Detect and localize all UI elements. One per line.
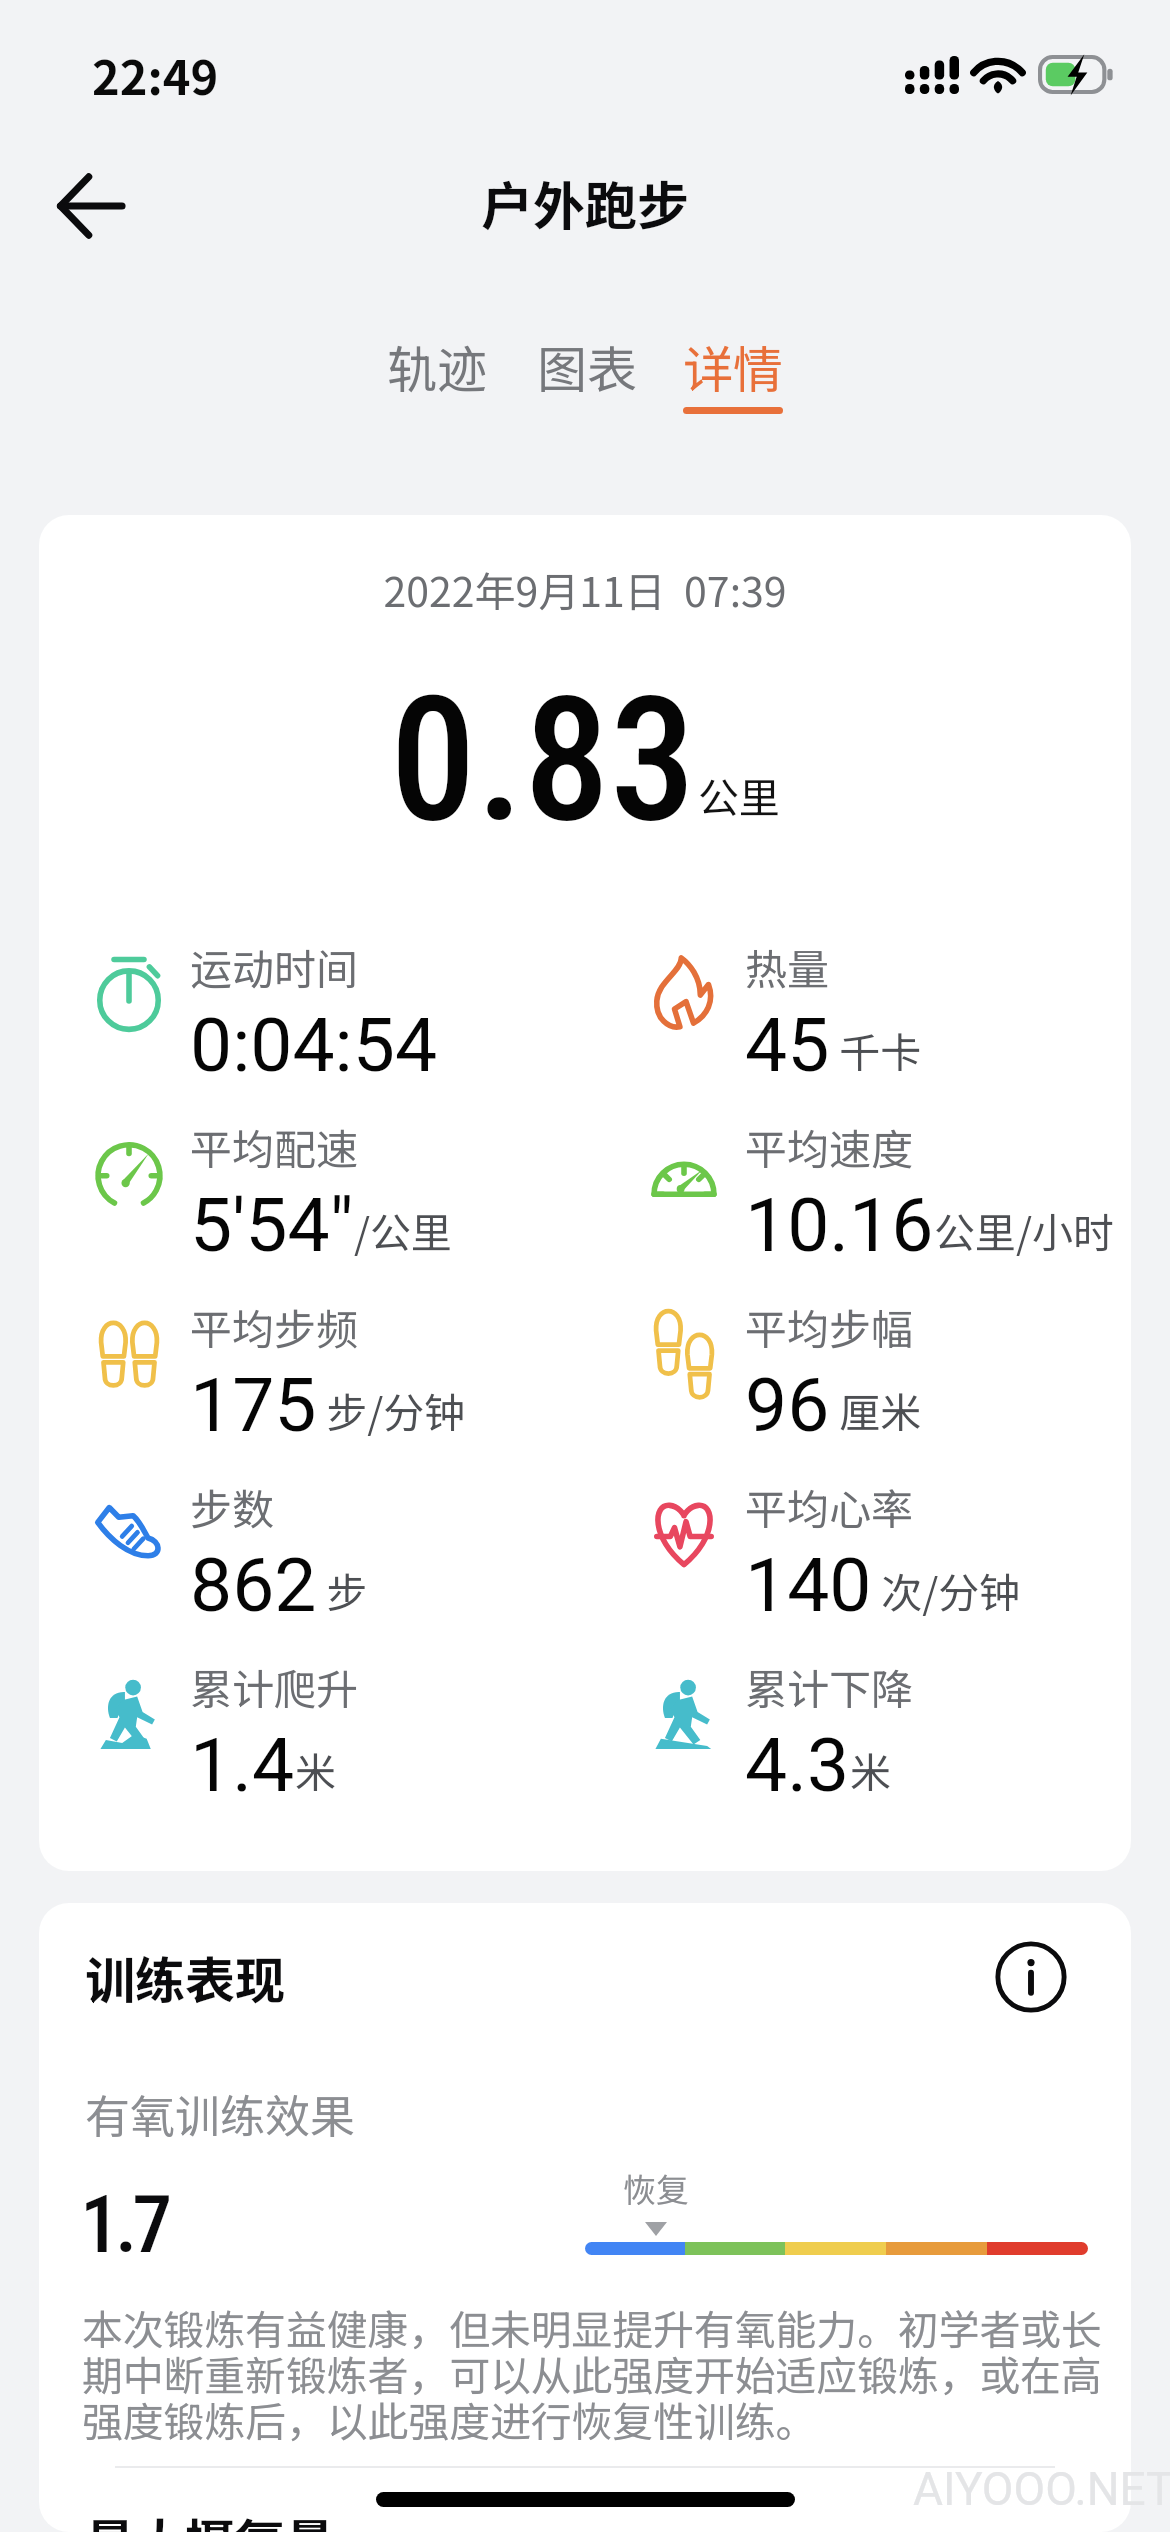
staticText: 平均步频 (190, 1296, 359, 1357)
button[interactable]: Back (34, 150, 146, 262)
staticText: 45 (745, 1001, 830, 1089)
staticText: 热量 (745, 936, 830, 997)
staticText: 10.16 (745, 1181, 934, 1269)
button[interactable]: 详情 (683, 330, 783, 414)
staticText: 图表 (537, 330, 637, 402)
staticText: 1.4 (190, 1721, 295, 1809)
staticText: 175 (190, 1361, 317, 1449)
staticText: 运动时间 (190, 936, 359, 997)
staticText: 步/分钟 (317, 1380, 466, 1439)
staticText: 次/分钟 (872, 1560, 1021, 1619)
staticText: 2022年9月11日 07:39 (39, 559, 1131, 618)
staticText: 户外跑步 (481, 165, 690, 240)
staticText: 有氧训练效果 (85, 2081, 356, 2146)
staticText: 140 (745, 1541, 872, 1629)
staticText: 厘米 (830, 1380, 922, 1439)
staticText: 步 (317, 1560, 368, 1619)
staticText: 0:04:54 (190, 1001, 438, 1089)
staticText: 米 (295, 1740, 336, 1799)
staticText: 96 (745, 1361, 830, 1449)
staticText: 公里/小时 (934, 1200, 1115, 1259)
staticText: /公里 (354, 1200, 453, 1259)
staticText: 轨迹 (387, 330, 487, 402)
staticText: 平均步幅 (745, 1296, 914, 1357)
button[interactable]: Info (987, 1933, 1075, 2021)
staticText: 训练表现 (85, 1941, 285, 2013)
staticText: 22:49 (92, 40, 219, 108)
staticText: 862 (190, 1541, 317, 1629)
staticText: 平均速度 (745, 1116, 914, 1177)
staticText: 本次锻炼有益健康，但未明显提升有氧能力。初学者或长期中断重新锻炼者，可以从此强度… (82, 2298, 1129, 2449)
button[interactable]: 图表 (537, 330, 637, 414)
staticText: 平均配速 (190, 1116, 359, 1177)
staticText: 1.7 (80, 2178, 168, 2272)
staticText: 累计爬升 (190, 1656, 359, 1717)
staticText: 步数 (190, 1476, 275, 1537)
staticText: 平均心率 (745, 1476, 914, 1537)
staticText: AIYOOO.NET (913, 2462, 1170, 2516)
staticText: 恢复 (623, 2164, 689, 2212)
staticText: 千卡 (830, 1020, 922, 1079)
staticText: 米 (850, 1740, 891, 1799)
staticText: 累计下降 (745, 1656, 914, 1717)
staticText: 0.83 (390, 659, 696, 861)
staticText: 公里 (698, 765, 780, 824)
staticText: 详情 (683, 330, 783, 402)
staticText: 4.3 (745, 1721, 850, 1809)
button[interactable]: 轨迹 (387, 330, 487, 414)
staticText: 5'54" (190, 1181, 354, 1269)
staticText: 最大摄氧量 (85, 2503, 335, 2532)
